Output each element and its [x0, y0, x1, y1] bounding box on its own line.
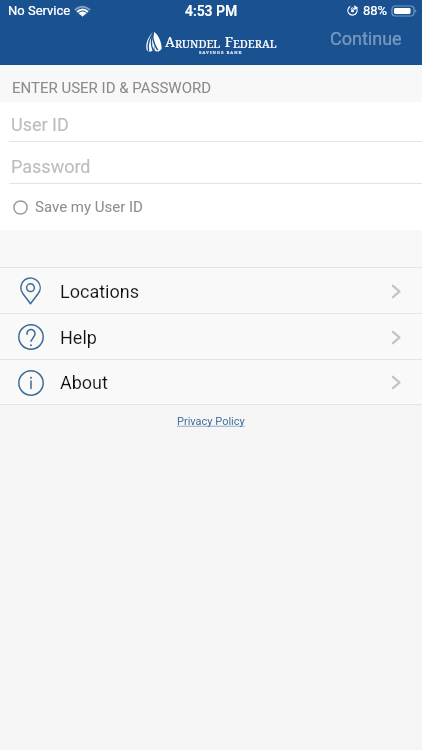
staticText: Locations — [60, 281, 139, 302]
staticText: RUNDEL — [175, 36, 221, 51]
staticText: 4:53 PM — [185, 3, 238, 19]
staticText: Password — [11, 156, 91, 177]
staticText: No Service — [8, 3, 71, 18]
staticText: SAVINGS BANK — [199, 50, 243, 56]
button[interactable]: Help — [0, 314, 422, 360]
staticText: Continue — [330, 28, 402, 49]
staticText: Save my User ID — [35, 198, 143, 216]
staticText: Privacy Policy — [177, 415, 245, 428]
staticText: User ID — [11, 114, 69, 135]
staticText: A — [165, 32, 175, 51]
staticText: Help — [60, 327, 97, 348]
staticText: About — [60, 372, 108, 393]
button[interactable]: Privacy Policy — [173, 412, 249, 431]
staticText: 88% — [363, 3, 388, 18]
button[interactable]: Save my User ID — [0, 184, 422, 230]
staticText: F — [221, 32, 233, 51]
button[interactable]: Locations — [0, 268, 422, 314]
button[interactable]: Continue — [324, 25, 408, 52]
button[interactable]: About — [0, 360, 422, 405]
staticText: EDERAL — [233, 36, 277, 51]
staticText: ENTER USER ID & PASSWORD — [12, 79, 212, 97]
